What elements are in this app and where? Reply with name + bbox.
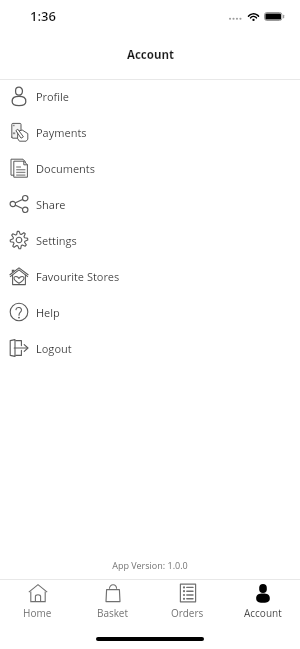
staticText: Payments <box>36 125 87 140</box>
staticText: Home <box>23 606 52 620</box>
staticText: App Version: 1.0.0 <box>0 559 300 571</box>
staticText: Documents <box>36 161 95 176</box>
staticText: Profile <box>36 89 69 104</box>
button[interactable]: Settings <box>0 222 300 258</box>
staticText: Orders <box>171 606 204 620</box>
button[interactable]: Favourite Stores <box>0 258 300 294</box>
staticText: Favourite Stores <box>36 269 120 284</box>
button[interactable]: Share <box>0 186 300 222</box>
button[interactable]: Help <box>0 294 300 330</box>
staticText: Help <box>36 305 60 320</box>
button[interactable]: Basket <box>75 580 150 628</box>
staticText: 1:36 <box>30 7 56 25</box>
button[interactable]: Payments <box>0 114 300 150</box>
staticText: Settings <box>36 233 77 248</box>
staticText: Share <box>36 197 66 212</box>
button[interactable]: Documents <box>0 150 300 186</box>
button[interactable]: Orders <box>150 580 225 628</box>
button[interactable]: Logout <box>0 330 300 366</box>
staticText: Account <box>244 606 282 620</box>
staticText: Basket <box>97 606 129 620</box>
button[interactable]: Profile <box>0 78 300 114</box>
staticText: Account <box>127 47 174 63</box>
staticText: Logout <box>36 341 72 356</box>
button[interactable]: Account <box>225 580 300 628</box>
button[interactable]: Home <box>0 580 75 628</box>
